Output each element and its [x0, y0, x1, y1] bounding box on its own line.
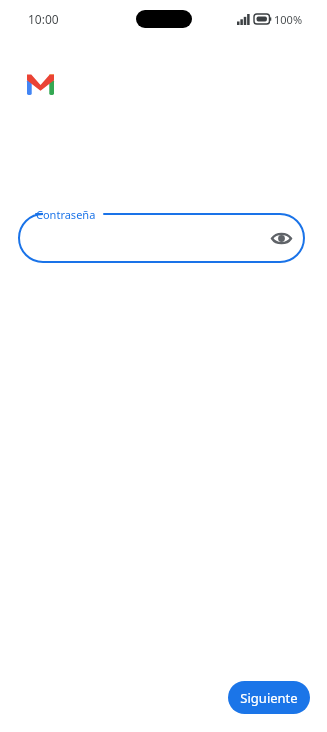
button[interactable]: Mostrar contraseña: [265, 222, 297, 254]
button[interactable]: Contraseña: [18, 213, 305, 263]
staticText: Siguiente: [240, 689, 298, 707]
staticText: 10:00: [28, 11, 59, 27]
staticText: 100%: [274, 12, 303, 26]
staticText: Contraseña: [36, 207, 96, 222]
button[interactable]: Siguiente: [228, 681, 310, 714]
